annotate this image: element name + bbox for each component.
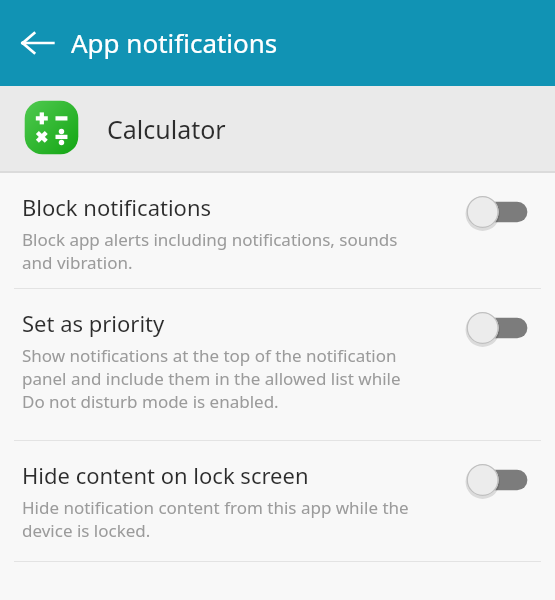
- staticText: Block notifications: [22, 192, 212, 222]
- button[interactable]: Navigate up: [8, 22, 66, 64]
- staticText: App notifications: [71, 25, 278, 60]
- button[interactable]: Set as priority toggle, off: [459, 293, 539, 363]
- button[interactable]: Hide content on lock screen: [0, 441, 555, 561]
- staticText: Set as priority: [22, 308, 165, 338]
- staticText: Hide content on lock screen: [22, 460, 309, 490]
- staticText: Show notifications at the top of the not…: [22, 344, 401, 413]
- button[interactable]: Set as priority: [0, 289, 555, 440]
- button[interactable]: Block notifications toggle, off: [459, 177, 539, 247]
- staticText: Calculator: [107, 112, 226, 146]
- staticText: Hide notification content from this app …: [22, 496, 409, 542]
- staticText: Block app alerts including notifications…: [22, 228, 398, 274]
- button[interactable]: Hide content on lock screen toggle, off: [459, 445, 539, 515]
- button[interactable]: Calculator: [0, 86, 555, 171]
- button[interactable]: Block notifications: [0, 173, 555, 288]
